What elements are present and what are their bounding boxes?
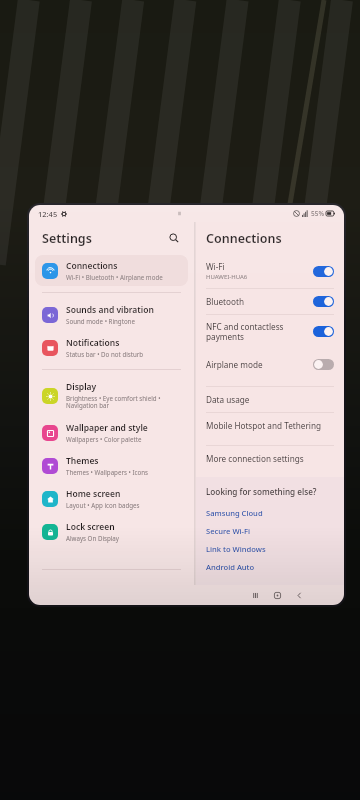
- staticText: Connections: [206, 230, 282, 247]
- button[interactable]: Wi-Fi: [196, 254, 344, 288]
- button[interactable]: More connection settings: [196, 446, 344, 471]
- staticText: Status bar • Do not disturb: [66, 350, 144, 358]
- staticText: Notifications: [66, 337, 120, 349]
- staticText: Wi-Fi: [206, 261, 225, 272]
- button[interactable]: Toggle on: [313, 296, 334, 307]
- button[interactable]: Toggle on: [313, 266, 334, 277]
- staticText: Lock screen: [66, 521, 115, 533]
- staticText: Link to Windows: [206, 544, 266, 554]
- staticText: Brightness • Eye comfort shield • Naviga…: [66, 394, 161, 410]
- staticText: HUAWEI-HUA6: [206, 273, 248, 281]
- button[interactable]: Sounds and vibration: [35, 299, 188, 330]
- staticText: Display: [66, 381, 97, 393]
- button[interactable]: Android Auto: [206, 558, 336, 576]
- staticText: Android Auto: [206, 562, 255, 572]
- staticText: Sound mode • Ringtone: [66, 317, 135, 325]
- staticText: Always On Display: [66, 534, 119, 542]
- button[interactable]: Link to Windows: [206, 540, 336, 558]
- button[interactable]: Display: [35, 376, 188, 415]
- staticText: Looking for something else?: [206, 486, 317, 497]
- staticText: Layout • App icon badges: [66, 501, 140, 509]
- staticText: Samsung Cloud: [206, 508, 263, 518]
- staticText: Bluetooth: [206, 296, 244, 307]
- staticText: Airplane mode: [206, 359, 263, 370]
- staticText: Data usage: [206, 394, 250, 405]
- button[interactable]: Toggle on: [313, 326, 334, 337]
- button[interactable]: Samsung Cloud: [206, 504, 336, 522]
- button[interactable]: NFC and contactless payments: [196, 315, 344, 348]
- button[interactable]: Data usage: [196, 387, 344, 412]
- button[interactable]: Lock screen: [35, 516, 188, 547]
- staticText: Themes: [66, 455, 99, 467]
- staticText: Connections: [66, 260, 118, 272]
- staticText: 12:45: [38, 209, 58, 219]
- button[interactable]: Home screen: [35, 483, 188, 514]
- button[interactable]: Notifications: [35, 332, 188, 363]
- staticText: Wallpaper and style: [66, 422, 148, 434]
- button[interactable]: Themes: [35, 450, 188, 481]
- staticText: Mobile Hotspot and Tethering: [206, 420, 321, 431]
- button[interactable]: Recent apps: [244, 585, 266, 605]
- button[interactable]: Toggle off: [313, 359, 334, 370]
- staticText: Secure Wi-Fi: [206, 526, 251, 536]
- staticText: Themes • Wallpapers • Icons: [66, 468, 149, 476]
- staticText: Home screen: [66, 488, 121, 500]
- staticText: NFC and contactless payments: [206, 321, 284, 342]
- button[interactable]: Secure Wi-Fi: [206, 522, 336, 540]
- staticText: More connection settings: [206, 453, 304, 464]
- button[interactable]: Mobile Hotspot and Tethering: [196, 413, 344, 438]
- staticText: 55%: [311, 209, 324, 218]
- button[interactable]: Home: [266, 585, 288, 605]
- button[interactable]: Airplane mode: [196, 352, 344, 377]
- staticText: Sounds and vibration: [66, 304, 154, 316]
- button[interactable]: Back: [288, 585, 310, 605]
- staticText: Wallpapers • Color palette: [66, 435, 142, 443]
- staticText: Settings: [42, 230, 92, 247]
- button[interactable]: Wallpaper and style: [35, 417, 188, 448]
- staticText: Wi-Fi • Bluetooth • Airplane mode: [66, 273, 163, 281]
- button[interactable]: Connections: [35, 255, 188, 286]
- button[interactable]: Search settings: [165, 229, 183, 247]
- button[interactable]: Bluetooth: [196, 289, 344, 314]
